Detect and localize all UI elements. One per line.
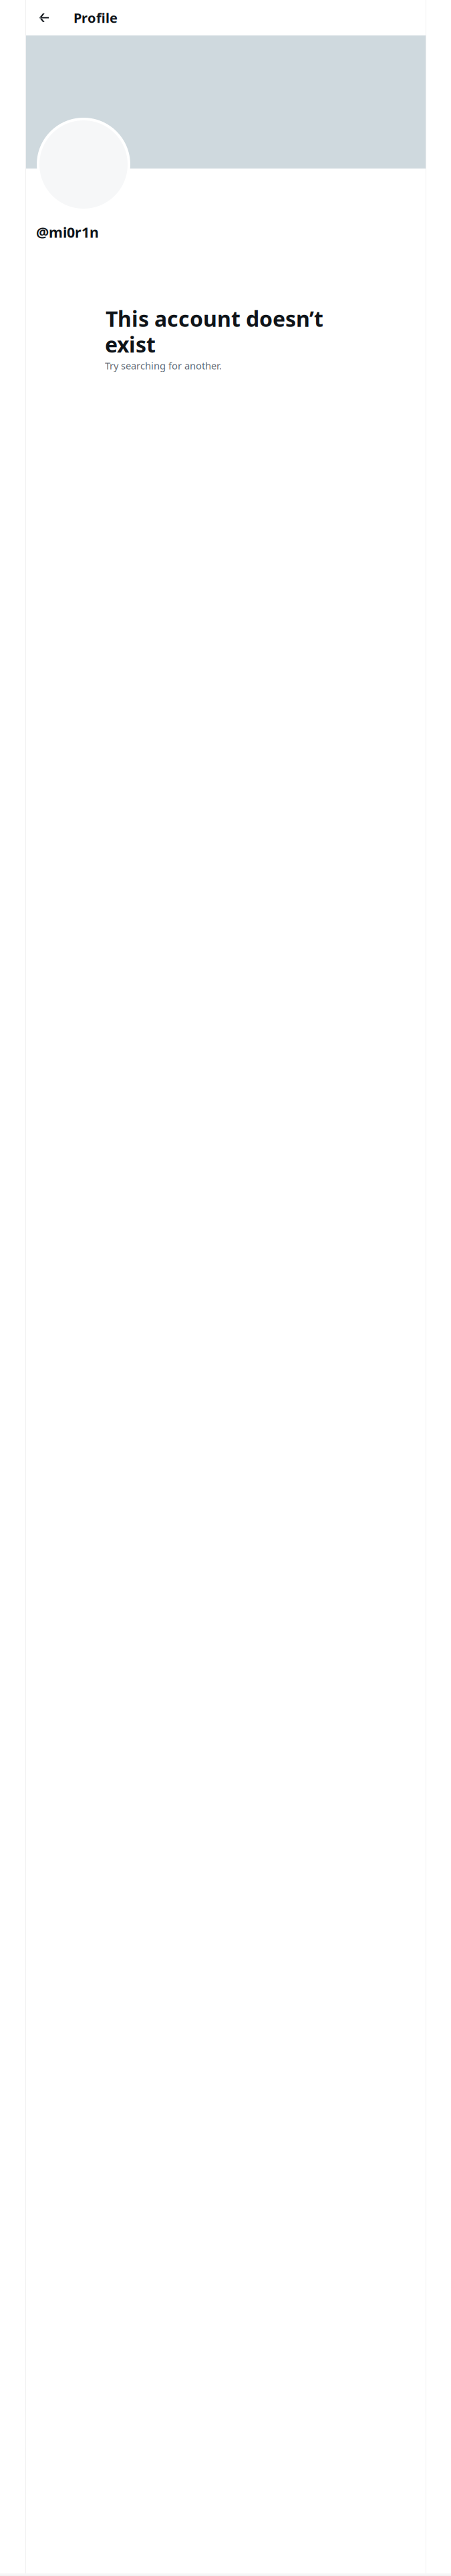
staticText: exist xyxy=(105,330,156,358)
staticText: Profile xyxy=(73,9,118,27)
button[interactable]: Profile photo xyxy=(37,118,130,211)
button[interactable]: Back xyxy=(33,6,55,29)
button[interactable]: Profile xyxy=(55,0,118,35)
staticText: Try searching for another. xyxy=(105,359,222,372)
staticText: This account doesn’t xyxy=(106,304,323,333)
staticText: @mi0r1n xyxy=(36,223,99,242)
